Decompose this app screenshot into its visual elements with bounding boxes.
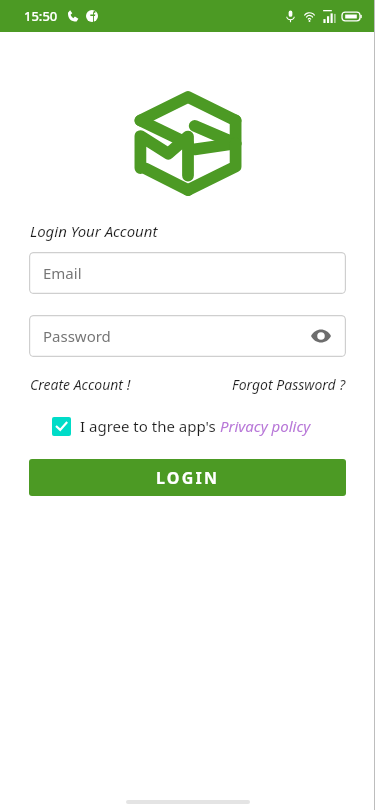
button[interactable]: Privacy policy <box>220 416 311 436</box>
button[interactable]: Agree to privacy policy <box>52 417 71 436</box>
staticText: Create Account ! <box>30 375 131 394</box>
staticText: Privacy policy <box>220 416 311 436</box>
button[interactable]: Password <box>29 315 346 357</box>
staticText: Forgot Password ? <box>232 375 346 394</box>
staticText: LOGIN <box>156 467 220 489</box>
staticText: Password <box>43 326 111 346</box>
staticText: Email <box>43 263 82 283</box>
button[interactable]: Email <box>29 252 346 294</box>
button[interactable]: Forgot Password ? <box>232 375 346 394</box>
staticText: I agree to the app's <box>80 416 220 436</box>
button[interactable]: Show password <box>308 323 334 349</box>
staticText: Login Your Account <box>30 221 158 241</box>
button[interactable]: Create Account ! <box>30 375 131 394</box>
staticText: 15:50 <box>24 7 58 25</box>
button[interactable]: LOGIN <box>29 459 346 496</box>
